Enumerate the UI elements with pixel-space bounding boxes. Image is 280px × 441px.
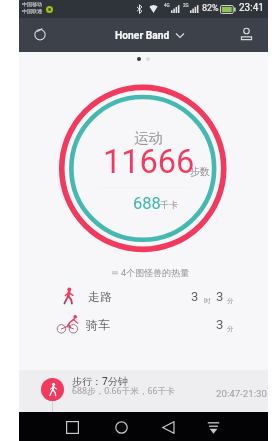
staticText: 3	[216, 317, 224, 332]
staticText: 23:41	[239, 2, 264, 14]
staticText: 82%	[202, 3, 219, 14]
staticText: 2G	[183, 3, 189, 8]
staticText: 3	[191, 289, 199, 304]
staticText: 688	[133, 194, 161, 213]
staticText: 分	[227, 297, 234, 305]
staticText: 千卡	[160, 199, 178, 210]
staticText: 4G	[164, 3, 170, 8]
button[interactable]: 步行：7分钟	[19, 370, 268, 412]
button[interactable]: 走路	[38, 284, 238, 308]
staticText: 4个图怪兽的热量	[121, 266, 190, 278]
staticText: Honer Band	[115, 29, 170, 41]
staticText: 3	[216, 289, 224, 304]
staticText: 11666	[103, 143, 195, 181]
staticText: 中国移动	[22, 1, 42, 7]
staticText: 分	[227, 325, 234, 333]
button[interactable]: Sync	[34, 28, 46, 40]
staticText: 688步，0.66千米，66千卡	[72, 385, 175, 397]
staticText: 20:47-21:30	[216, 388, 267, 399]
staticText: 骑车	[86, 317, 110, 332]
button[interactable]: Hide keyboard	[202, 416, 224, 438]
staticText: 步数	[190, 165, 210, 178]
staticText: 运动	[134, 129, 164, 147]
staticText: 步行：7分钟	[72, 374, 128, 388]
button[interactable]: Honer Band	[115, 29, 184, 41]
button[interactable]: Recents	[61, 416, 83, 438]
button[interactable]: Back	[157, 416, 179, 438]
button[interactable]: 骑车	[38, 312, 238, 336]
button[interactable]: Home	[110, 416, 132, 438]
staticText: 时	[204, 297, 211, 305]
button[interactable]: Account	[241, 28, 252, 40]
staticText: 走路	[88, 289, 112, 304]
staticText: 中国联通	[22, 8, 42, 14]
